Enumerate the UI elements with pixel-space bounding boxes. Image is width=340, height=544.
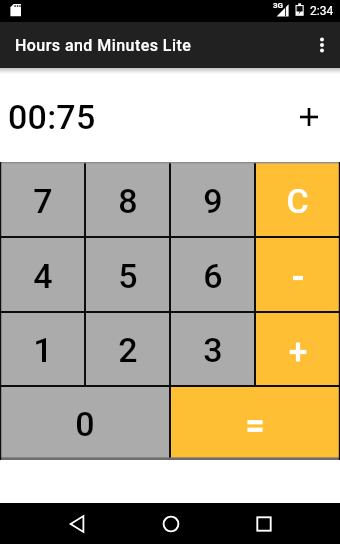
button[interactable]: 2 — [86, 313, 169, 385]
button[interactable]: Plus — [256, 313, 339, 385]
button[interactable]: 5 — [86, 238, 169, 311]
staticText: 00:75 — [8, 97, 96, 137]
staticText: C — [286, 181, 309, 221]
staticText: 7 — [33, 181, 53, 221]
button[interactable]: Add — [291, 99, 327, 135]
button[interactable]: Equals — [171, 387, 339, 459]
button[interactable]: Minus — [256, 238, 339, 311]
button[interactable]: 7 — [1, 163, 84, 236]
button[interactable]: Back — [46, 503, 110, 544]
button[interactable]: 9 — [171, 163, 254, 236]
staticText: 1 — [33, 330, 53, 370]
button[interactable]: 1 — [1, 313, 84, 385]
staticText: 2 — [118, 330, 138, 370]
staticText: 6 — [203, 256, 223, 296]
button[interactable]: Recents — [232, 503, 296, 544]
button[interactable]: 0 — [1, 387, 169, 459]
button[interactable]: 4 — [1, 238, 84, 311]
staticText: 9 — [203, 181, 223, 221]
staticText: Hours and Minutes Lite — [15, 36, 192, 55]
staticText: 4 — [33, 256, 53, 296]
staticText: 8 — [118, 181, 138, 221]
staticText: 3 — [203, 330, 223, 370]
button[interactable]: More options — [302, 22, 340, 68]
button[interactable]: Home — [139, 503, 203, 544]
staticText: 2:34 — [310, 4, 334, 18]
staticText: 0 — [75, 404, 95, 444]
button[interactable]: C — [256, 163, 339, 236]
staticText: 5 — [118, 256, 138, 296]
button[interactable]: 6 — [171, 238, 254, 311]
button[interactable]: 8 — [86, 163, 169, 236]
staticText: 3G — [273, 1, 284, 10]
button[interactable]: 3 — [171, 313, 254, 385]
